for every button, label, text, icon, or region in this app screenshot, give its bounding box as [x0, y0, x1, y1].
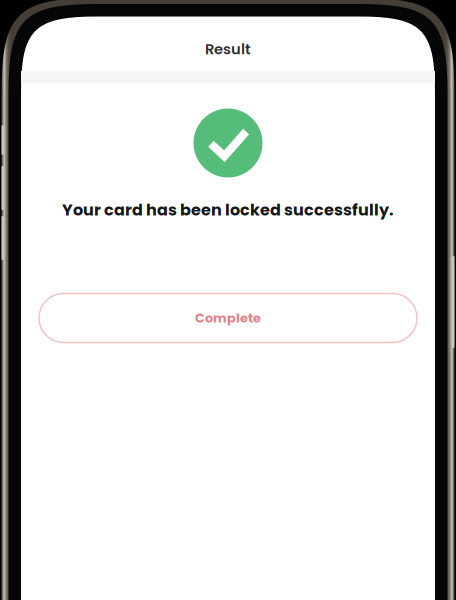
staticText: Your card has been locked successfully. — [62, 199, 394, 221]
staticText: Result — [205, 39, 251, 59]
staticText: Complete — [195, 309, 261, 327]
button[interactable]: Complete — [39, 293, 417, 342]
